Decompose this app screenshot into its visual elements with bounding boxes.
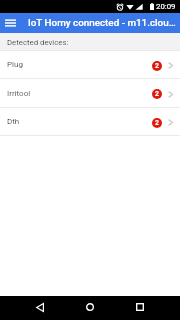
staticText: 20:09 <box>156 2 176 11</box>
staticText: Plug <box>7 60 23 69</box>
button[interactable]: Back <box>28 295 52 319</box>
button[interactable]: Home <box>78 295 102 319</box>
button[interactable]: Dth <box>0 108 180 135</box>
staticText: 2 <box>155 119 159 127</box>
button[interactable]: Recent apps <box>128 295 152 319</box>
button[interactable]: Open navigation drawer <box>0 13 20 33</box>
staticText: 2 <box>155 90 159 98</box>
button[interactable]: Irritool <box>0 79 180 107</box>
staticText: Detected devices: <box>7 38 69 47</box>
staticText: Dth <box>7 117 20 126</box>
staticText: IoT Homy connected - m11.cloudmqtt.com <box>28 17 176 29</box>
button[interactable]: Plug <box>0 51 180 78</box>
staticText: Irritool <box>7 89 31 98</box>
staticText: 2 <box>155 62 159 70</box>
